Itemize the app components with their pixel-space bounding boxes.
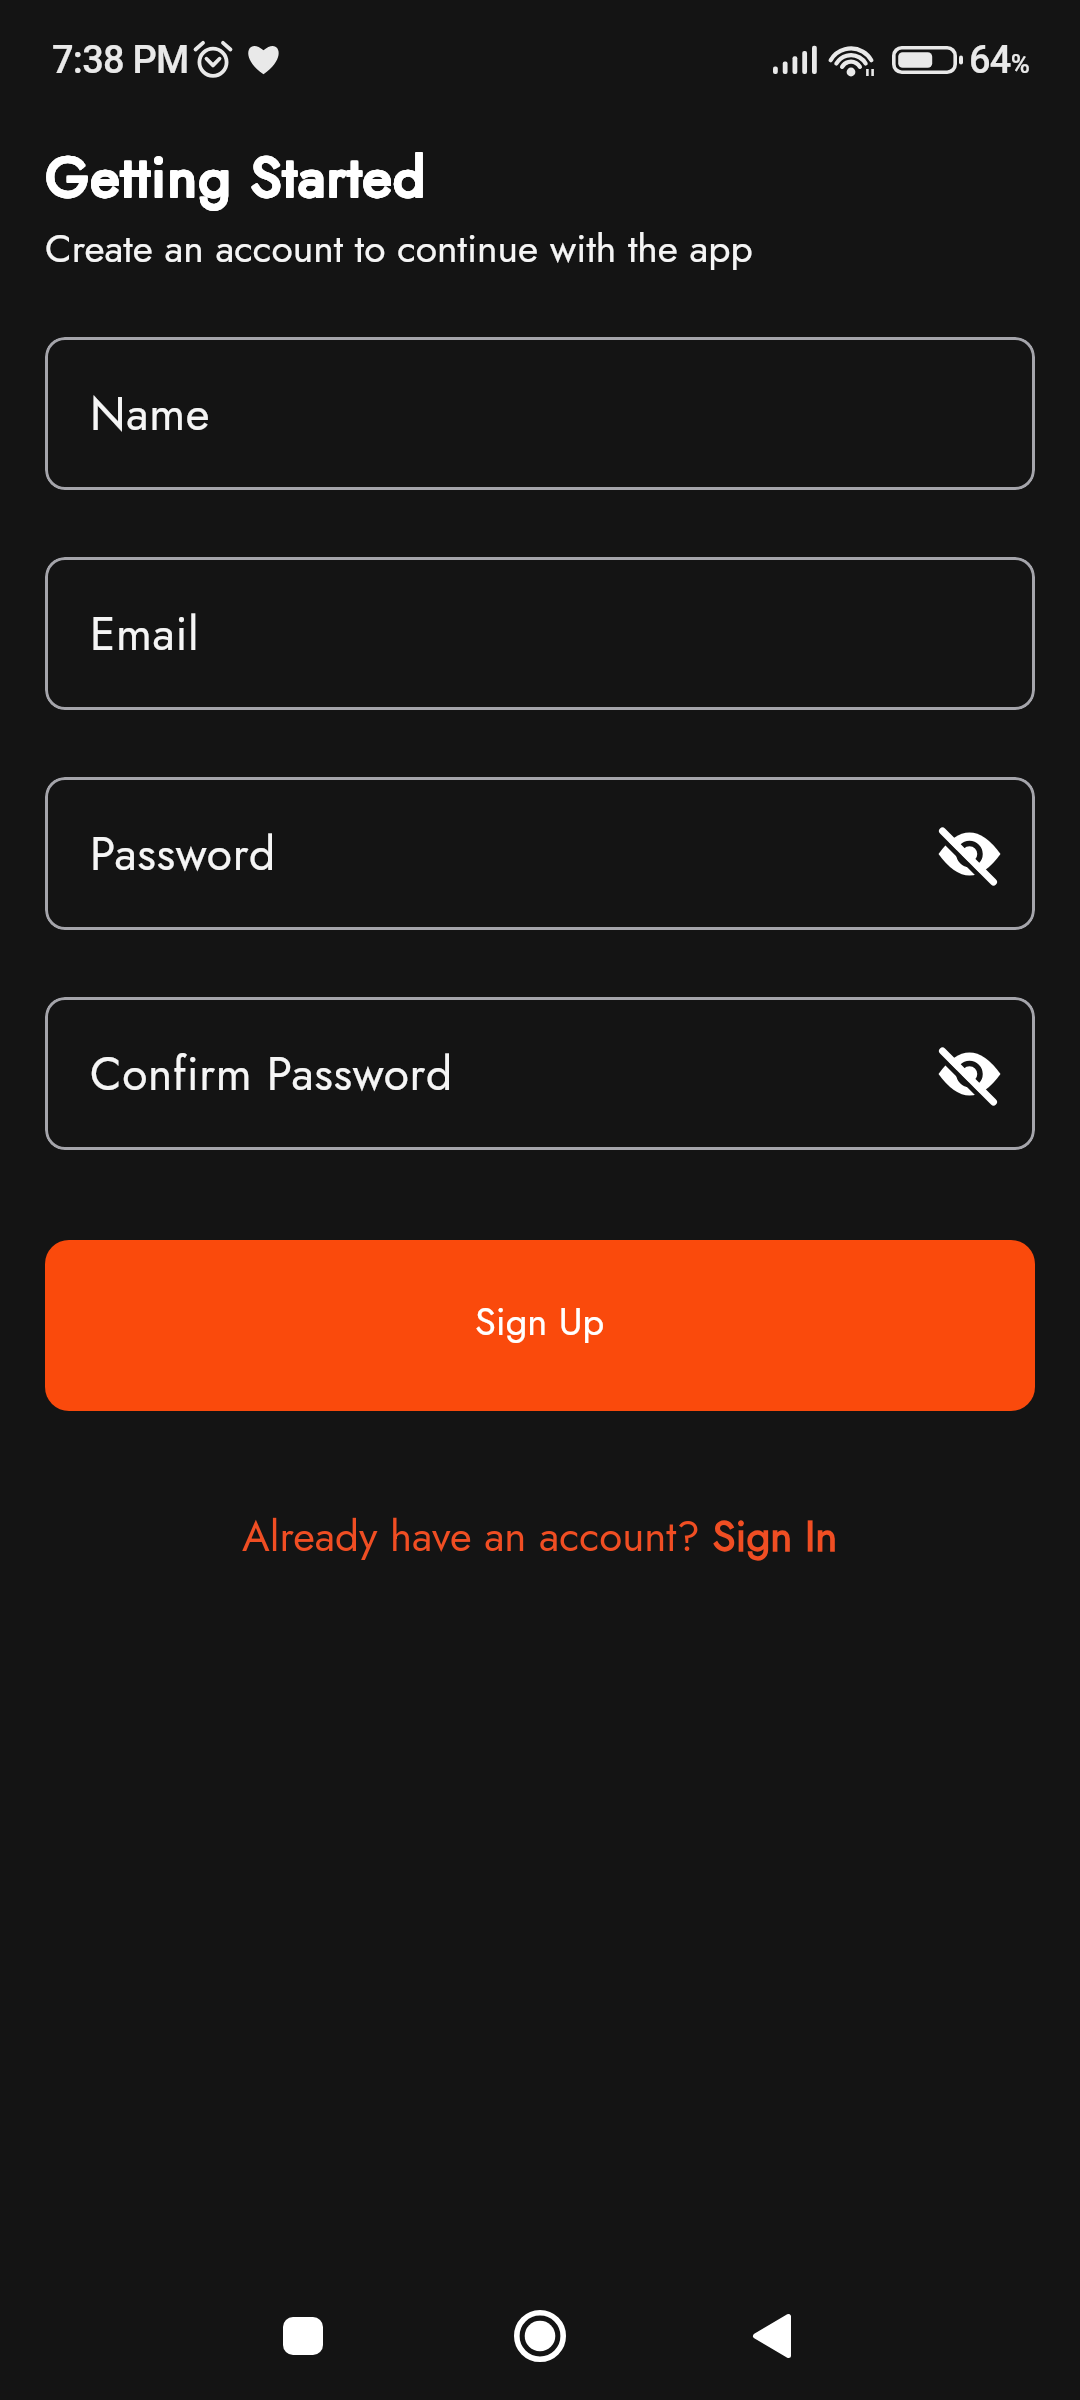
- staticText: Name: [90, 381, 211, 447]
- button[interactable]: Sign Up: [45, 1240, 1035, 1411]
- staticText: 7:38 PM: [52, 38, 189, 83]
- button[interactable]: Email: [45, 557, 1035, 710]
- button[interactable]: [740, 2304, 804, 2368]
- staticText: Getting Started: [45, 136, 427, 217]
- staticText: 64%: [969, 38, 1030, 83]
- staticText: Password: [90, 821, 277, 887]
- button[interactable]: [271, 2304, 335, 2368]
- button[interactable]: Confirm Password: [45, 997, 1035, 1150]
- button[interactable]: Password: [45, 777, 1035, 930]
- staticText: Confirm Password: [90, 1041, 453, 1107]
- staticText: Sign Up: [475, 1294, 605, 1349]
- button[interactable]: [508, 2304, 572, 2368]
- staticText: Getting Started: [46, 136, 428, 217]
- staticText: Create an account to continue with the a…: [45, 220, 753, 276]
- staticText: Getting Started: [46, 137, 428, 218]
- staticText: Getting Started: [45, 137, 427, 218]
- staticText: Email: [90, 601, 200, 667]
- button[interactable]: Name: [45, 337, 1035, 490]
- button[interactable]: Already have an account? Sign In: [242, 1506, 838, 1567]
- button[interactable]: [938, 1044, 1002, 1104]
- button[interactable]: [938, 824, 1002, 884]
